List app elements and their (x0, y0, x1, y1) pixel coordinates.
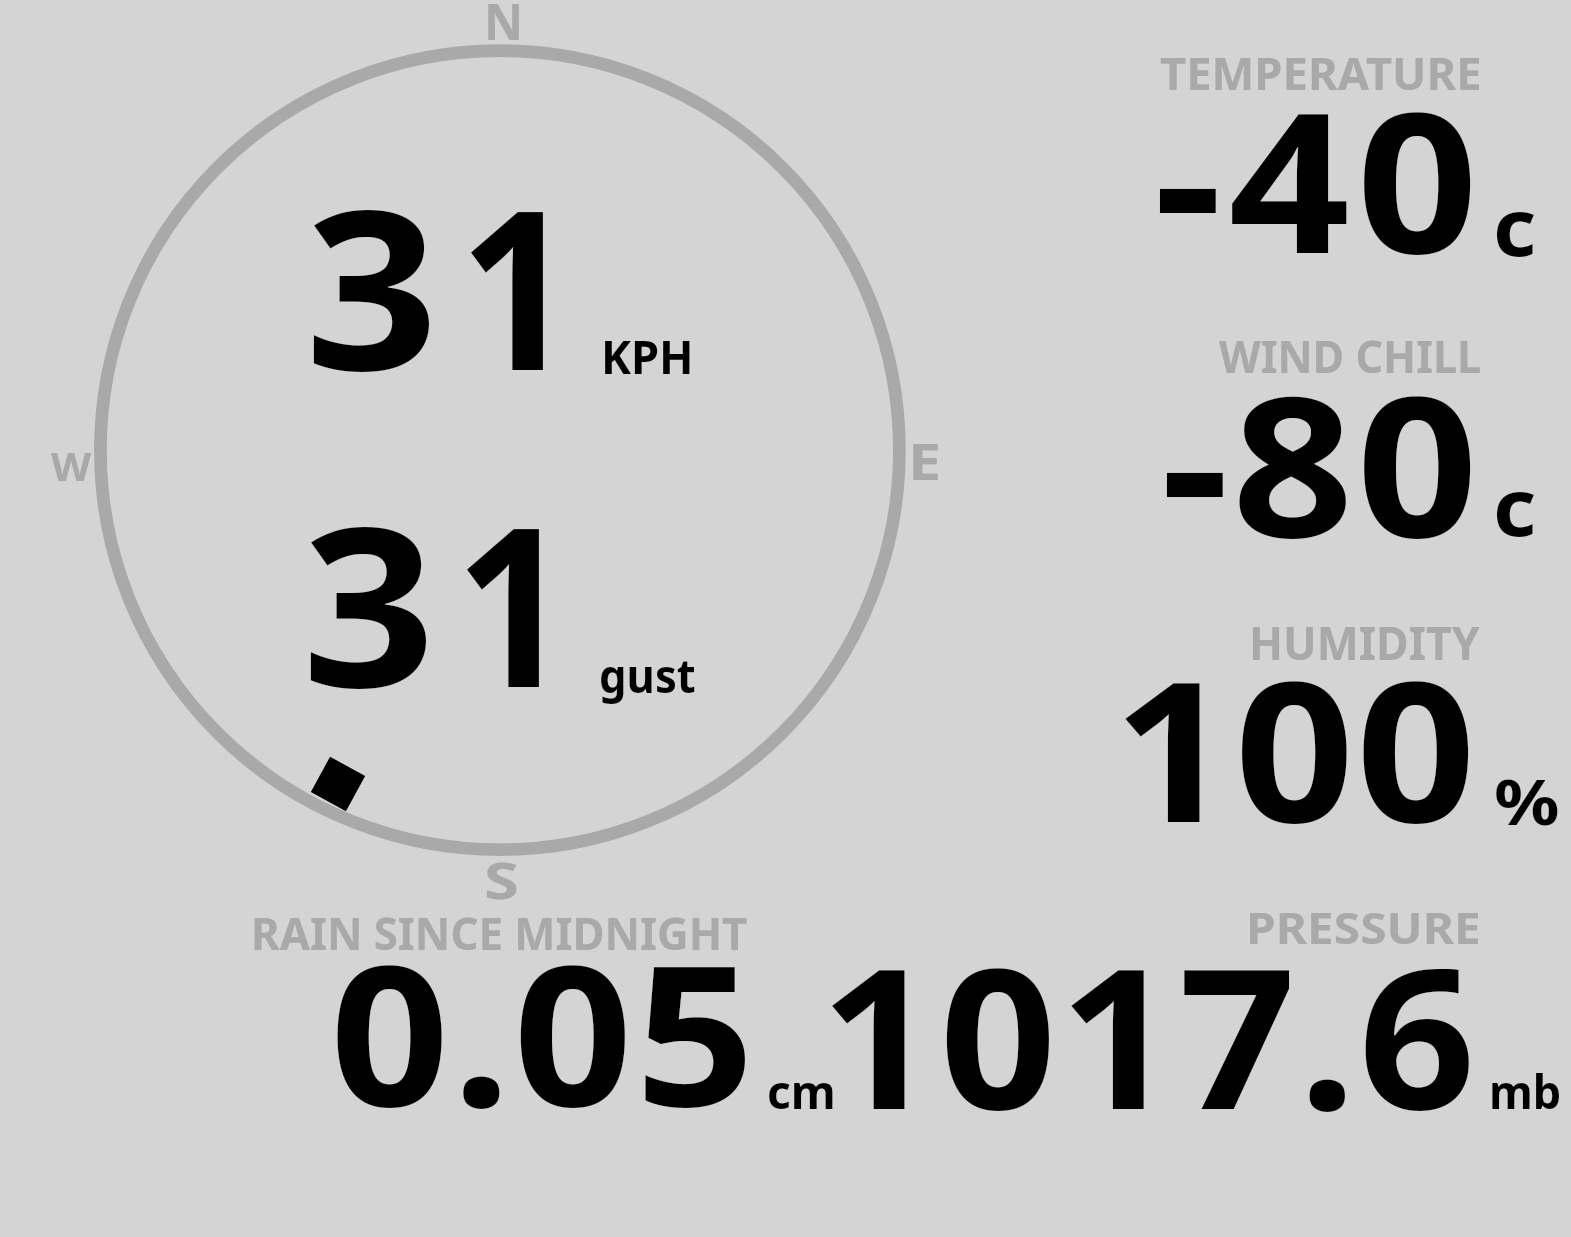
staticText: mb (1489, 1059, 1561, 1123)
staticText: % (1494, 758, 1560, 843)
staticText: 100 (1113, 615, 1478, 879)
staticText: 1 (459, 134, 576, 435)
staticText: cm (767, 1059, 837, 1123)
staticText: E (908, 426, 942, 495)
staticText: N (484, 0, 524, 55)
staticText: 3 (302, 451, 436, 752)
staticText: 1 (455, 451, 572, 752)
button[interactable]: Wind chill minus 80 degrees Celsius (1050, 310, 1570, 560)
staticText: 1017.6 (820, 902, 1478, 1166)
button[interactable]: Wind direction compass, 31 KPH, gust 31 (60, 20, 940, 880)
staticText: RAIN SINCE MIDNIGHT (251, 902, 748, 963)
button[interactable]: Temperature minus 40 degrees Celsius (1050, 30, 1570, 280)
staticText: S (484, 845, 519, 914)
staticText: W (51, 439, 91, 492)
staticText: KPH (601, 324, 695, 387)
staticText: c (1493, 172, 1536, 280)
staticText: PRESSURE (1246, 897, 1481, 956)
staticText: WIND CHILL (1219, 325, 1482, 386)
staticText: HUMIDITY (1249, 611, 1480, 674)
staticText: -40 (1154, 46, 1485, 310)
button[interactable]: Pressure 1017.6 millibars (850, 890, 1570, 1130)
staticText: -80 (1161, 330, 1482, 594)
staticText: c (1493, 452, 1536, 560)
staticText: 0.05 (330, 899, 758, 1163)
staticText: 3 (305, 134, 439, 435)
button[interactable]: Rain since midnight, 0.05 centimetres (240, 890, 840, 1130)
staticText: gust (599, 643, 696, 707)
staticText: TEMPERATURE (1160, 43, 1482, 103)
button[interactable]: Humidity 100 percent (1050, 595, 1570, 845)
